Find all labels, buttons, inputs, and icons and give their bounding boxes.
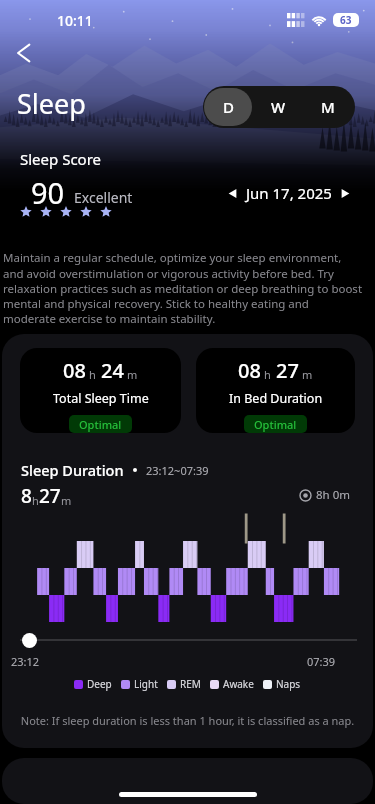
staticText: 23:12 <box>11 654 40 669</box>
staticText: Naps <box>276 677 301 691</box>
button[interactable]: 08 <box>196 348 355 433</box>
staticText: 8h 0m <box>316 487 351 503</box>
staticText: h <box>32 493 39 508</box>
staticText: Optimal <box>254 417 297 432</box>
staticText: Note: If sleep duration is less than 1 h… <box>2 713 373 728</box>
staticText: W <box>271 97 286 117</box>
staticText: 27 <box>39 483 61 509</box>
button[interactable] <box>2 758 373 804</box>
staticText: 8 <box>21 483 32 509</box>
staticText: Optimal <box>79 417 122 432</box>
button[interactable]: Jun 17, 2025 <box>227 183 351 203</box>
staticText: Maintain a regular schedule, optimize yo… <box>3 250 363 326</box>
staticText: 08 <box>63 357 86 384</box>
staticText: M <box>321 97 335 117</box>
staticText: h <box>264 367 271 382</box>
staticText: Sleep <box>17 85 86 122</box>
staticText: m <box>127 367 138 382</box>
staticText: 63 <box>340 13 352 27</box>
staticText: 27 <box>276 357 299 384</box>
staticText: 08 <box>238 357 261 384</box>
staticText: 10:11 <box>57 11 93 30</box>
staticText: 23:12~07:39 <box>146 463 209 478</box>
staticText: In Bed Duration <box>229 390 323 407</box>
staticText: 07:39 <box>307 654 336 669</box>
staticText: Sleep Duration <box>21 460 124 480</box>
staticText: m <box>302 367 313 382</box>
staticText: Awake <box>223 677 254 691</box>
button[interactable]: D <box>204 88 252 126</box>
staticText: Total Sleep Time <box>53 390 149 407</box>
staticText: 90 <box>31 173 65 212</box>
staticText: m <box>61 493 72 508</box>
staticText: Deep <box>87 677 112 691</box>
button[interactable]: W <box>254 88 302 126</box>
staticText: Jun 17, 2025 <box>246 183 332 203</box>
staticText: Light <box>134 677 158 691</box>
staticText: 24 <box>101 357 124 384</box>
staticText: h <box>89 367 96 382</box>
button[interactable]: Back <box>5 35 41 71</box>
button[interactable]: Time slider <box>22 633 37 648</box>
staticText: REM <box>180 677 201 691</box>
button[interactable]: 08 <box>20 348 181 433</box>
button[interactable]: M <box>304 88 352 126</box>
staticText: Sleep Score <box>20 149 102 169</box>
staticText: D <box>223 97 234 117</box>
staticText: Excellent <box>74 188 133 207</box>
